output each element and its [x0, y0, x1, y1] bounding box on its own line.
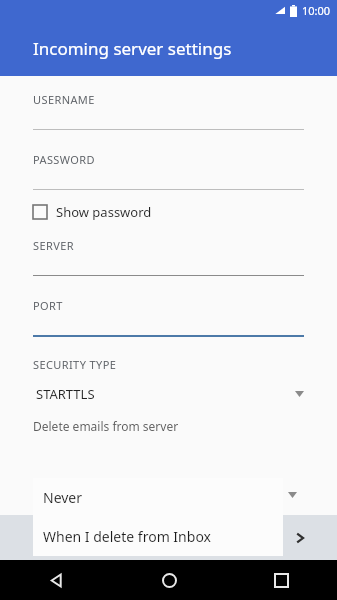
staticText: 10:00	[302, 3, 331, 18]
other: Next	[293, 531, 307, 545]
button[interactable]: Next	[0, 515, 337, 560]
staticText: USERNAME	[33, 92, 95, 107]
staticText: SECURITY TYPE	[33, 357, 117, 372]
staticText: Show password	[56, 203, 152, 221]
staticText: STARTTLS	[36, 385, 95, 403]
button[interactable]: Show password	[0, 198, 337, 226]
button[interactable]: Home	[113, 560, 225, 600]
button[interactable]: Never	[33, 478, 283, 517]
staticText: SERVER	[33, 238, 74, 253]
button[interactable]: STARTTLS	[0, 382, 337, 406]
staticText: Delete emails from server	[33, 418, 179, 434]
button[interactable]: Recent apps	[225, 560, 337, 600]
staticText: Never	[43, 488, 83, 507]
button[interactable]: When I delete from Inbox	[33, 517, 283, 556]
button[interactable]: Back	[0, 560, 113, 600]
staticText: Incoming server settings	[33, 37, 232, 60]
staticText: PASSWORD	[33, 152, 95, 167]
staticText: PORT	[33, 298, 63, 313]
staticText: When I delete from Inbox	[43, 527, 211, 546]
